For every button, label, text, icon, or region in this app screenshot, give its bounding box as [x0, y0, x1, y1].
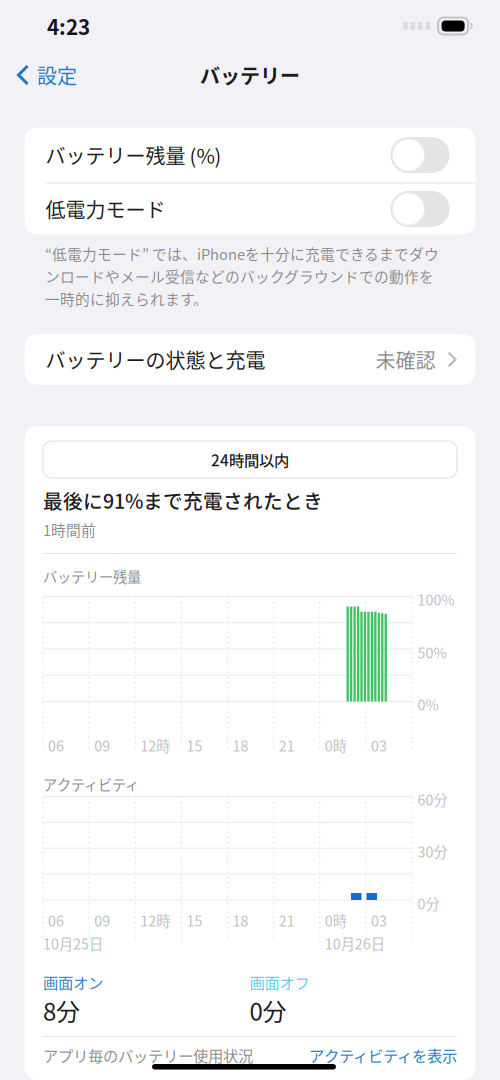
staticText: 低電力モード [45, 194, 165, 223]
staticText: 0% [417, 694, 438, 715]
staticText: 0時 [325, 735, 347, 756]
staticText: バッテリー残量 [43, 566, 141, 587]
staticText: バッテリー [200, 60, 300, 89]
staticText: 画面オフ [249, 971, 309, 993]
staticText: 最後に91%まで充電されたとき [43, 486, 323, 514]
staticText: 0分 [417, 893, 439, 914]
staticText: “低電力モード” では、iPhoneを十分に充電できるまでダウンロードやメール受… [45, 243, 439, 309]
staticText: 設定 [37, 60, 77, 89]
button[interactable]: バッテリーの状態と充電 [24, 334, 475, 385]
staticText: バッテリー残量 (%) [45, 140, 221, 169]
staticText: 60分 [417, 789, 447, 810]
button[interactable]: 設定 [0, 54, 87, 95]
staticText: 10月25日 [43, 933, 103, 954]
staticText: 15 [186, 910, 202, 931]
staticText: 03 [371, 735, 387, 756]
staticText: 18 [232, 910, 248, 931]
staticText: 0時 [325, 910, 347, 931]
staticText: 21 [279, 735, 295, 756]
button[interactable]: 24時間以内 [43, 441, 457, 478]
staticText: アクティビティ [43, 774, 139, 795]
staticText: アクティビティを表示 [309, 1044, 457, 1066]
staticText: 未確認 [375, 345, 435, 374]
staticText: 0分 [249, 993, 286, 1028]
staticText: 1時間前 [43, 519, 96, 540]
button[interactable]: バッテリー残量 (%) [24, 127, 475, 182]
staticText: 4:23 [47, 11, 90, 41]
staticText: アプリ毎のバッテリー使用状況 [43, 1044, 253, 1066]
staticText: 06 [48, 910, 64, 931]
button[interactable]: アプリ毎のバッテリー使用状況 [43, 1038, 457, 1072]
staticText: 24時間以内 [211, 448, 289, 471]
staticText: バッテリーの状態と充電 [45, 345, 265, 374]
staticText: 09 [94, 910, 110, 931]
staticText: 8分 [43, 993, 80, 1028]
staticText: 画面オン [43, 971, 103, 993]
staticText: 50% [417, 642, 446, 663]
staticText: 18 [232, 735, 248, 756]
staticText: 03 [371, 910, 387, 931]
staticText: 06 [48, 735, 64, 756]
staticText: 09 [94, 735, 110, 756]
staticText: 100% [417, 589, 454, 610]
staticText: 15 [186, 735, 202, 756]
button[interactable]: 低電力モード [24, 183, 475, 234]
staticText: 12時 [140, 910, 170, 931]
staticText: 30分 [417, 841, 447, 862]
staticText: 21 [279, 910, 295, 931]
staticText: 10月26日 [325, 933, 385, 954]
staticText: 12時 [140, 735, 170, 756]
